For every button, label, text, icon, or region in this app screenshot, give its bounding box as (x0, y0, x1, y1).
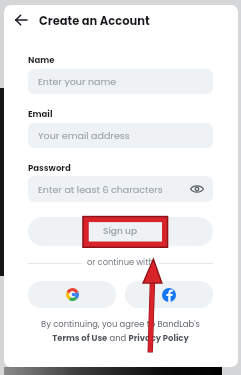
button[interactable]: Show password (189, 181, 205, 197)
button[interactable]: Your email address (28, 123, 213, 148)
staticText: Enter your name (38, 75, 117, 88)
staticText: By continuing, you agree to BandLab's (41, 318, 200, 330)
staticText: or continue with (87, 256, 154, 268)
staticText: Enter at least 6 characters (38, 183, 163, 196)
button[interactable]: Continue with Google (28, 281, 116, 308)
button[interactable]: Enter at least 6 characters (28, 176, 213, 202)
staticText: Name (28, 54, 55, 66)
staticText: Create an Account (39, 13, 150, 29)
button[interactable]: Continue with Facebook (125, 281, 213, 308)
staticText: Your email address (38, 129, 130, 142)
button[interactable]: Terms of Use and Privacy Policy (52, 332, 189, 344)
staticText: Sign up (103, 225, 138, 238)
staticText: Password (28, 162, 71, 174)
button[interactable]: Sign up (28, 217, 213, 246)
button[interactable]: Back (9, 8, 33, 32)
staticText: Email (28, 108, 53, 120)
button[interactable]: Enter your name (28, 69, 213, 94)
